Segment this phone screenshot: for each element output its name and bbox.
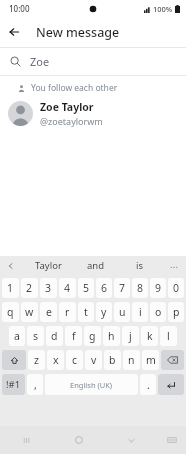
button[interactable]: z: [28, 350, 45, 370]
staticText: 10:00: [9, 3, 30, 14]
staticText: l: [167, 329, 170, 343]
button[interactable]: Change keyboard: [158, 426, 186, 454]
button[interactable]: Enter: [158, 374, 184, 395]
staticText: v: [91, 353, 97, 367]
button[interactable]: w: [21, 302, 38, 322]
staticText: 100%: [153, 4, 173, 14]
button[interactable]: is: [118, 256, 162, 275]
staticText: You follow each other: [31, 82, 118, 94]
button[interactable]: f: [65, 326, 82, 346]
button[interactable]: .: [140, 374, 156, 395]
staticText: k: [147, 329, 153, 343]
staticText: y: [101, 305, 107, 319]
staticText: New message: [36, 24, 120, 41]
staticText: s: [33, 329, 39, 343]
button[interactable]: v: [85, 350, 102, 370]
button[interactable]: Taylor: [22, 256, 74, 275]
button[interactable]: ,: [27, 374, 43, 395]
button[interactable]: 2: [21, 278, 38, 298]
button[interactable]: d: [46, 326, 63, 346]
staticText: English (UK): [70, 380, 113, 390]
button[interactable]: g: [84, 326, 101, 346]
staticText: e: [46, 305, 52, 319]
button[interactable]: 9: [150, 278, 166, 298]
button[interactable]: a: [9, 326, 25, 346]
button[interactable]: 7: [114, 278, 130, 298]
button[interactable]: Home: [52, 426, 105, 454]
button[interactable]: !#1: [2, 374, 25, 395]
staticText: q: [7, 305, 14, 319]
button[interactable]: l: [160, 326, 177, 346]
staticText: !#1: [6, 378, 21, 391]
staticText: 2: [26, 281, 33, 295]
staticText: 8: [137, 281, 144, 295]
staticText: 6: [101, 281, 108, 295]
button[interactable]: Zoe: [0, 48, 186, 75]
staticText: 7: [119, 281, 126, 295]
button[interactable]: q: [2, 302, 19, 322]
staticText: c: [72, 353, 78, 367]
staticText: 1: [7, 281, 14, 295]
button[interactable]: r: [59, 302, 76, 322]
staticText: b: [109, 353, 116, 367]
button[interactable]: b: [104, 350, 121, 370]
button[interactable]: English (UK): [45, 374, 138, 395]
staticText: h: [108, 329, 115, 343]
button[interactable]: 3: [40, 278, 57, 298]
staticText: z: [34, 353, 39, 367]
staticText: 5: [83, 281, 90, 295]
button[interactable]: y: [96, 302, 112, 322]
button[interactable]: Shift: [2, 350, 26, 370]
staticText: Zoe: [30, 54, 50, 69]
button[interactable]: Backspace: [161, 350, 184, 370]
button[interactable]: 0: [168, 278, 184, 298]
button[interactable]: c: [66, 350, 83, 370]
button[interactable]: k: [141, 326, 158, 346]
button[interactable]: Back: [0, 18, 28, 46]
button[interactable]: 5: [78, 278, 94, 298]
button[interactable]: e: [40, 302, 57, 322]
staticText: 3: [45, 281, 52, 295]
staticText: 0: [173, 281, 180, 295]
staticText: g: [89, 329, 96, 343]
button[interactable]: 6: [96, 278, 112, 298]
button[interactable]: o: [150, 302, 166, 322]
staticText: ,: [34, 378, 37, 392]
staticText: 9: [155, 281, 162, 295]
button[interactable]: Zoe Taylor: [0, 97, 186, 129]
button[interactable]: m: [142, 350, 159, 370]
staticText: 4: [64, 281, 71, 295]
button[interactable]: Recents: [0, 426, 52, 454]
button[interactable]: Previous suggestions: [0, 256, 22, 275]
button[interactable]: i: [132, 302, 148, 322]
staticText: is: [136, 259, 144, 272]
staticText: u: [119, 305, 126, 319]
staticText: r: [65, 305, 70, 319]
staticText: and: [87, 259, 105, 272]
staticText: x: [53, 353, 59, 367]
staticText: i: [139, 305, 142, 319]
staticText: n: [128, 353, 135, 367]
button[interactable]: h: [103, 326, 120, 346]
button[interactable]: and: [74, 256, 118, 275]
staticText: .: [147, 378, 150, 392]
staticText: t: [84, 305, 88, 319]
staticText: Zoe Taylor: [40, 100, 94, 114]
staticText: m: [146, 353, 156, 367]
staticText: w: [25, 305, 34, 319]
staticText: f: [72, 329, 76, 343]
button[interactable]: p: [168, 302, 184, 322]
button[interactable]: More suggestions: [162, 256, 186, 275]
button[interactable]: j: [122, 326, 139, 346]
button[interactable]: x: [47, 350, 64, 370]
button[interactable]: u: [114, 302, 130, 322]
staticText: j: [129, 329, 132, 343]
button[interactable]: 1: [2, 278, 19, 298]
button[interactable]: t: [78, 302, 94, 322]
button[interactable]: n: [123, 350, 140, 370]
staticText: d: [51, 329, 58, 343]
button[interactable]: 8: [132, 278, 148, 298]
button[interactable]: 4: [59, 278, 76, 298]
button[interactable]: s: [27, 326, 44, 346]
